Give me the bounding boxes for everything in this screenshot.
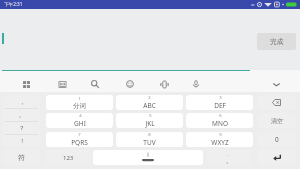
button[interactable]: 完成 xyxy=(257,33,296,50)
button[interactable]: 符 xyxy=(3,150,40,165)
button[interactable]: 123 xyxy=(46,150,90,165)
staticText: 3 xyxy=(219,95,222,101)
button[interactable]: ？ xyxy=(3,121,40,134)
button[interactable]: 1 xyxy=(46,95,113,110)
button[interactable]: Emoji xyxy=(123,77,137,91)
button[interactable]: Search xyxy=(88,77,102,91)
button[interactable]: Clipboard xyxy=(157,77,171,91)
staticText: 2 xyxy=(148,95,151,101)
button[interactable]: 3 xyxy=(186,95,253,110)
staticText: 下午2:31 xyxy=(4,1,23,7)
staticText: ， xyxy=(19,98,25,106)
staticText: 分词 xyxy=(73,102,86,110)
staticText: WXYZ xyxy=(211,138,229,147)
button[interactable]: Enter xyxy=(257,150,296,165)
button[interactable]: 8 xyxy=(116,132,183,147)
button[interactable]: 0 xyxy=(257,132,296,147)
staticText: 。 xyxy=(19,111,25,119)
staticText: TUV xyxy=(143,138,156,147)
button[interactable]: Backspace xyxy=(257,95,296,110)
staticText: 1 xyxy=(78,96,81,102)
button[interactable]: Apps xyxy=(19,77,33,91)
staticText: 6 xyxy=(219,113,222,119)
button[interactable]: Collapse keyboard xyxy=(269,77,283,91)
staticText: 清空 xyxy=(271,117,283,125)
button[interactable]: Voice input xyxy=(189,77,203,91)
button[interactable]: 5 xyxy=(116,113,183,128)
button[interactable]: 清空 xyxy=(257,113,296,128)
staticText: 0 xyxy=(275,135,279,144)
staticText: MNO xyxy=(212,119,228,128)
staticText: PQRS xyxy=(71,138,88,147)
button[interactable]: ， xyxy=(3,95,40,108)
staticText: ？ xyxy=(19,124,25,132)
staticText: 4 xyxy=(79,113,82,119)
button[interactable]: ！ xyxy=(3,134,40,147)
staticText: GHI xyxy=(74,119,86,128)
staticText: 。 xyxy=(226,157,233,165)
staticText: 8 xyxy=(148,132,151,138)
staticText: 123 xyxy=(63,154,74,162)
button[interactable]: 2 xyxy=(116,95,183,110)
staticText: DEF xyxy=(214,101,226,110)
button[interactable]: Space xyxy=(93,150,203,165)
staticText: ！ xyxy=(19,137,25,145)
button[interactable]: 。 xyxy=(3,108,40,121)
button[interactable]: 7 xyxy=(46,132,113,147)
staticText: 7 xyxy=(78,132,81,138)
staticText: 9 xyxy=(219,132,222,138)
staticText: 符 xyxy=(18,153,25,162)
staticText: 5 xyxy=(149,113,152,119)
staticText: 、 xyxy=(227,151,232,157)
button[interactable]: 6 xyxy=(186,113,253,128)
staticText: ABC xyxy=(143,101,156,110)
button[interactable]: 4 xyxy=(46,113,113,128)
button[interactable]: 9 xyxy=(186,132,253,147)
staticText: JKL xyxy=(145,119,155,128)
button[interactable]: Keyboard layout xyxy=(55,77,69,91)
staticText: 完成 xyxy=(270,37,284,46)
